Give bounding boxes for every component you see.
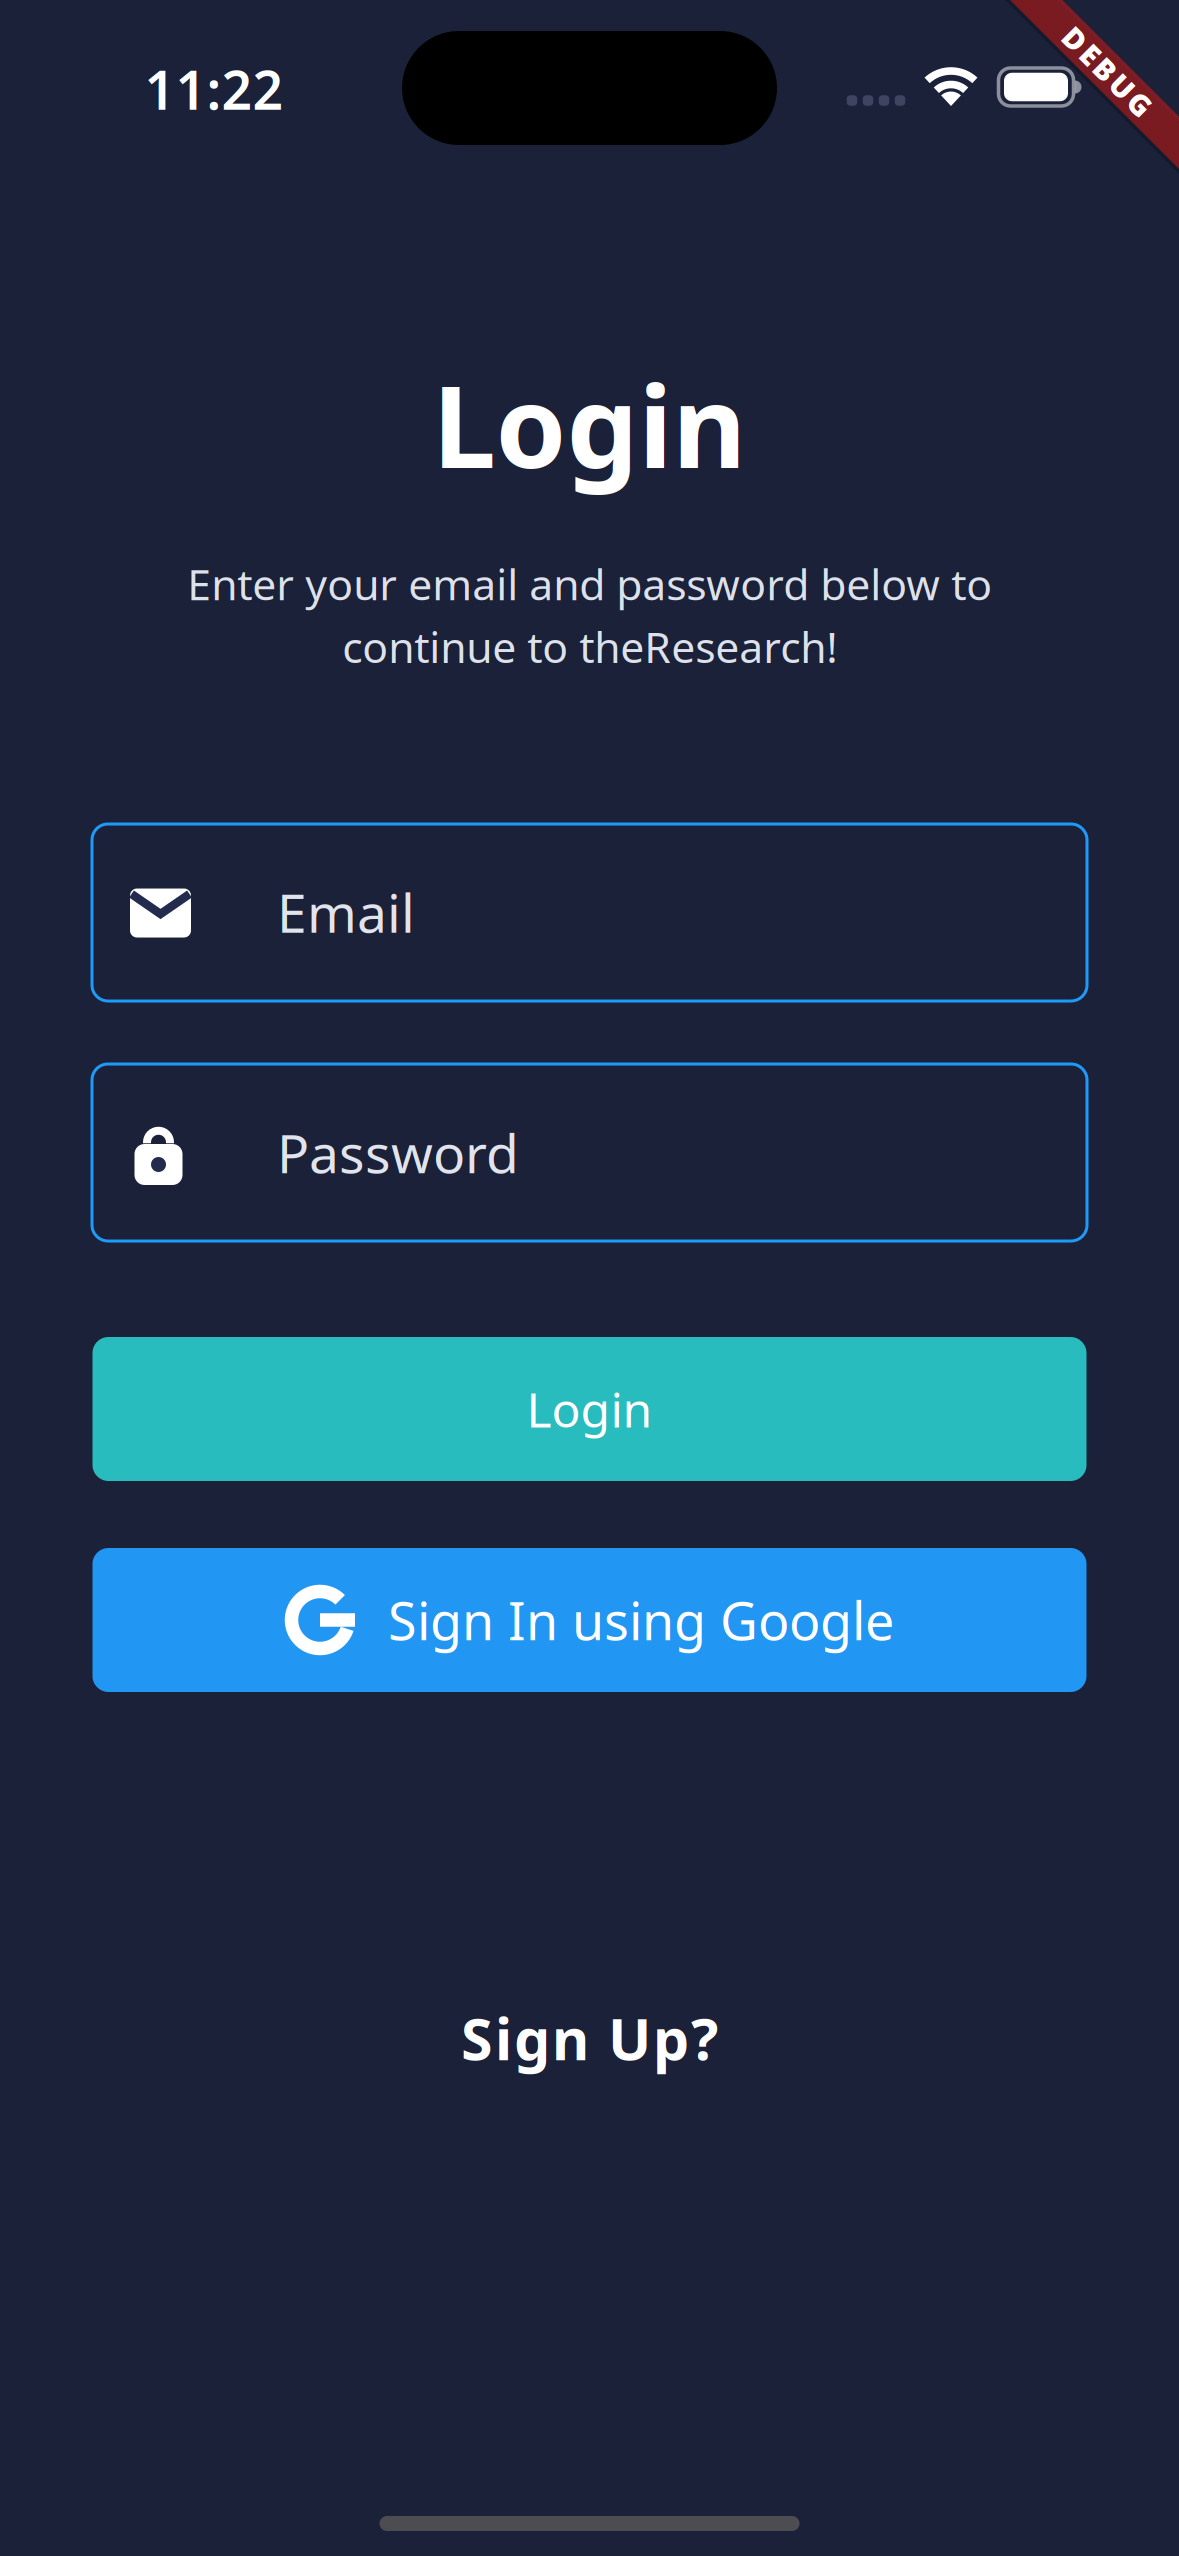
staticText: Sign Up? xyxy=(461,2000,718,2076)
staticText: Sign In using Google xyxy=(388,1585,894,1655)
staticText: Enter your email and password below to c… xyxy=(187,555,992,675)
staticText: Password xyxy=(277,1117,519,1188)
staticText: DEBUG xyxy=(1051,52,1165,91)
button[interactable]: Sign In using Google xyxy=(92,1548,1086,1692)
button[interactable]: Email xyxy=(92,824,1087,1001)
button[interactable]: Sign Up? xyxy=(461,2000,718,2076)
staticText: 11:22 xyxy=(144,54,283,124)
button[interactable]: Login xyxy=(92,1337,1086,1481)
button[interactable]: Password xyxy=(92,1064,1087,1241)
staticText: Email xyxy=(277,877,415,947)
staticText: Login xyxy=(432,349,746,499)
staticText: Login xyxy=(526,1377,652,1441)
